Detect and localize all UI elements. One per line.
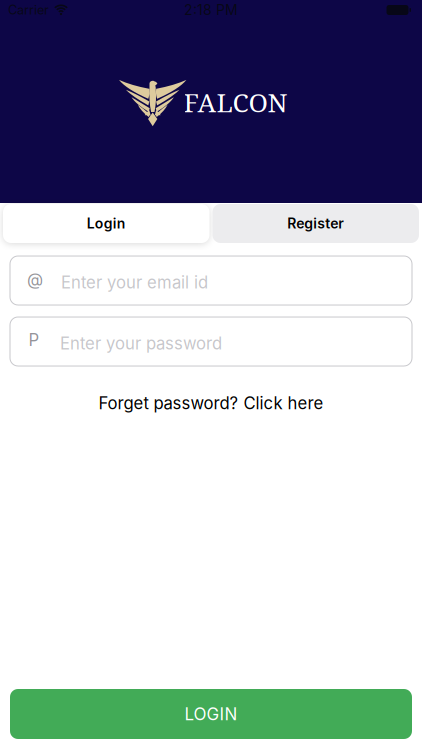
staticText: @ — [27, 269, 43, 290]
button[interactable]: Login — [3, 204, 209, 243]
staticText: Register — [287, 215, 344, 232]
staticText: LOGIN — [184, 704, 237, 724]
button[interactable]: Forget password? Click here — [98, 393, 323, 413]
staticText: Carrier — [8, 2, 49, 18]
staticText: Enter your email id — [61, 272, 208, 293]
staticText: FALCON — [183, 84, 287, 120]
staticText: Login — [87, 215, 126, 232]
button[interactable]: P — [10, 317, 412, 366]
button[interactable]: LOGIN — [10, 689, 412, 739]
staticText: P — [28, 330, 39, 350]
staticText: Forget password? Click here — [98, 393, 323, 413]
button[interactable]: @ — [10, 256, 412, 305]
button[interactable]: Register — [212, 204, 419, 243]
staticText: Enter your password — [60, 333, 222, 354]
staticText: 2:18 PM — [184, 1, 238, 18]
